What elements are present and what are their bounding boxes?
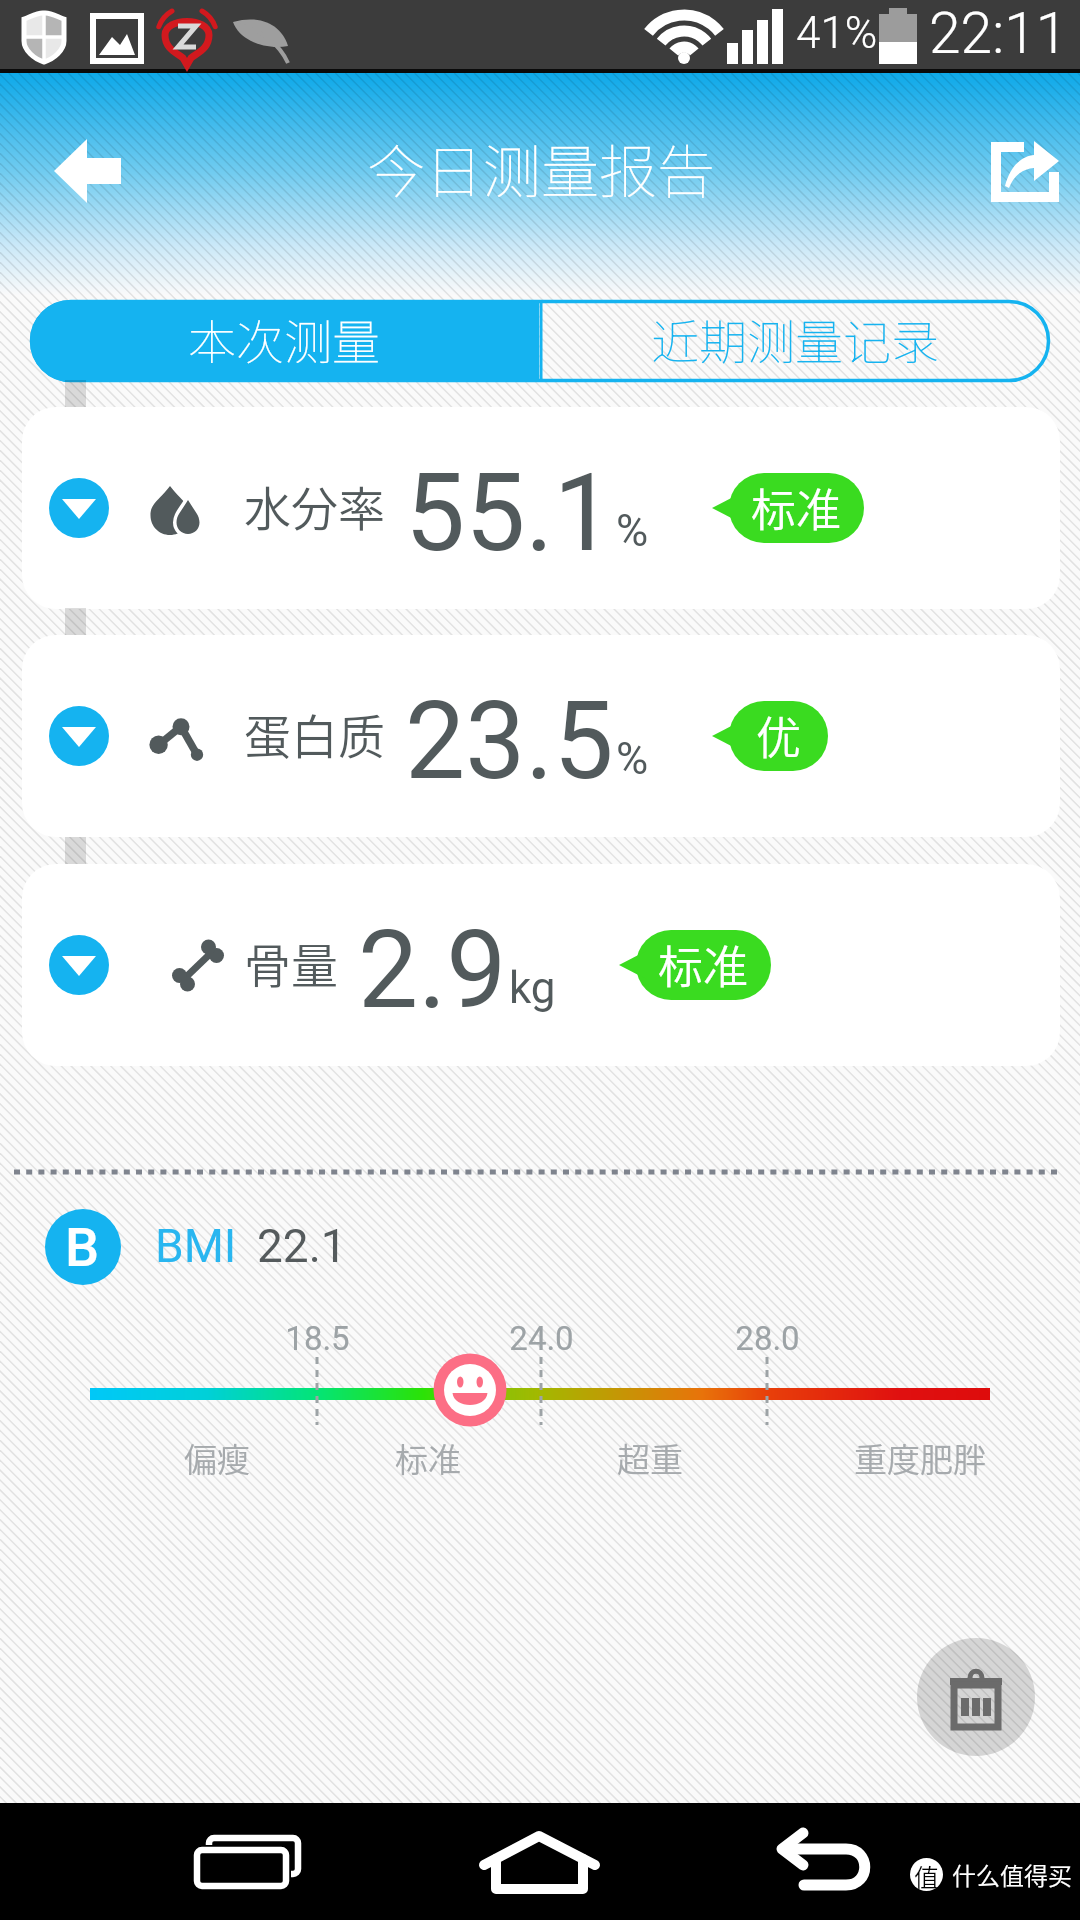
staticText: 55.1	[405, 451, 614, 576]
staticText: 值	[914, 1858, 940, 1891]
staticText: 28.0	[735, 1319, 800, 1358]
staticText: %	[616, 733, 649, 785]
button[interactable]: Back	[34, 120, 142, 222]
staticText: BMI	[155, 1219, 237, 1273]
staticText: 22.1	[257, 1219, 347, 1273]
staticText: 近期测量记录	[651, 304, 940, 374]
staticText: 蛋白质	[244, 699, 385, 767]
staticText: 标准	[751, 475, 842, 540]
staticText: 41%	[796, 7, 878, 59]
staticText: 什么值得买	[952, 1857, 1072, 1892]
button[interactable]: Recent apps	[147, 1803, 347, 1920]
staticText: %	[616, 505, 649, 557]
button[interactable]: Back	[740, 1803, 940, 1920]
button[interactable]: 骨量	[22, 864, 1060, 1066]
button[interactable]: 优	[729, 701, 828, 771]
button[interactable]: 水分率	[22, 407, 1060, 609]
staticText: 18.5	[285, 1319, 350, 1358]
staticText: 22:11	[929, 0, 1068, 67]
button[interactable]: 标准	[636, 930, 771, 1000]
staticText: B	[65, 1216, 100, 1279]
staticText: 超重	[617, 1434, 683, 1482]
staticText: 重度肥胖	[854, 1434, 986, 1482]
staticText: 2.9	[358, 908, 507, 1033]
button[interactable]: 近期测量记录	[541, 300, 1050, 382]
staticText: 23.5	[405, 679, 614, 804]
staticText: 本次测量	[188, 304, 381, 374]
staticText: 优	[756, 703, 802, 768]
button[interactable]: 蛋白质	[22, 635, 1060, 837]
staticText: 水分率	[244, 471, 385, 539]
staticText: 标准	[395, 1434, 461, 1482]
staticText: 24.0	[509, 1319, 574, 1358]
button[interactable]: 本次测量	[30, 300, 539, 382]
button[interactable]: Home	[440, 1803, 640, 1920]
staticText: 骨量	[244, 928, 338, 996]
staticText: 今日测量报告	[367, 126, 716, 210]
staticText: 标准	[658, 932, 749, 997]
button[interactable]: Share	[985, 134, 1065, 208]
staticText: kg	[509, 962, 556, 1014]
button[interactable]: 标准	[729, 473, 864, 543]
button[interactable]: Delete	[917, 1638, 1035, 1756]
staticText: 偏瘦	[184, 1434, 250, 1482]
